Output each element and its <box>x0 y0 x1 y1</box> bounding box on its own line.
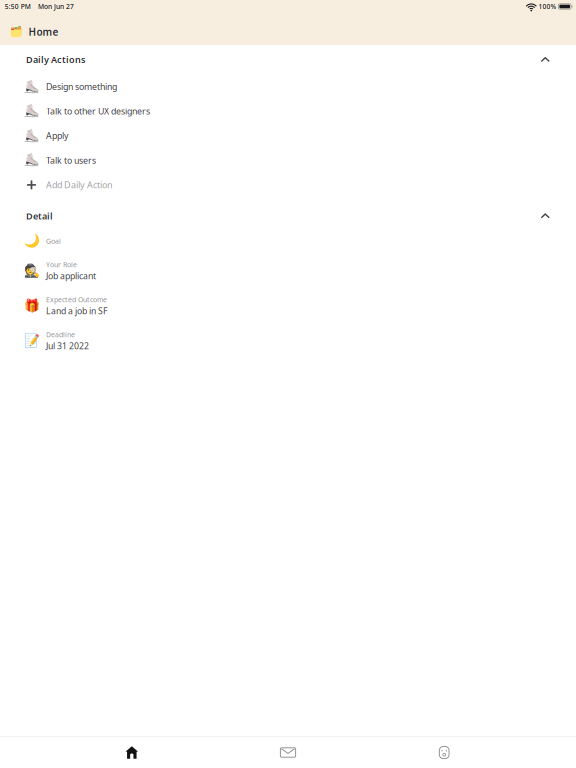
staticText: Job applicant <box>46 270 96 282</box>
staticText: Add Daily Action <box>46 179 113 191</box>
button[interactable]: 🗂️ <box>0 13 576 45</box>
staticText: 100% <box>538 2 556 11</box>
staticText: Design something <box>46 81 117 92</box>
button[interactable]: Home <box>54 737 210 768</box>
staticText: Talk to users <box>46 154 96 166</box>
button[interactable]: 🕵️ <box>0 253 576 288</box>
staticText: Mon Jun 27 <box>38 2 74 11</box>
button[interactable]: Detail <box>0 203 576 229</box>
staticText: ⛸️ <box>24 129 39 143</box>
staticText: Daily Actions <box>26 54 85 66</box>
button[interactable]: 🎁 <box>0 288 576 323</box>
button[interactable]: Daily Actions <box>0 45 576 74</box>
staticText: 🕵️ <box>23 263 39 278</box>
button[interactable]: 📝 <box>0 323 576 358</box>
staticText: Home <box>28 25 58 38</box>
staticText: 🎁 <box>23 298 39 313</box>
button[interactable]: Add Daily Action <box>0 173 576 197</box>
button[interactable]: ⛸️ <box>0 74 576 99</box>
staticText: 📝 <box>23 333 39 348</box>
button[interactable]: ⛸️ <box>0 123 576 148</box>
staticText: ⛸️ <box>24 79 39 93</box>
staticText: ⛸️ <box>24 153 39 167</box>
staticText: Talk to other UX designers <box>46 105 150 117</box>
button[interactable]: 🌙 <box>0 229 576 253</box>
staticText: Apply <box>46 130 68 142</box>
button[interactable]: ⛸️ <box>0 148 576 173</box>
staticText: Expected Outcome <box>46 295 107 304</box>
staticText: Detail <box>26 210 53 222</box>
staticText: ⛸️ <box>24 104 39 118</box>
staticText: 🌙 <box>23 234 39 248</box>
staticText: Land a job in SF <box>46 305 107 317</box>
staticText: Deadline <box>46 330 75 339</box>
staticText: 🗂️ <box>10 26 22 37</box>
staticText: Jul 31 2022 <box>46 340 89 352</box>
staticText: Your Role <box>46 260 77 269</box>
staticText: 5:50 PM <box>5 2 31 11</box>
staticText: Goal <box>46 236 61 246</box>
button[interactable]: ⛸️ <box>0 99 576 123</box>
button[interactable]: Profile <box>366 737 522 768</box>
button[interactable]: Messages <box>210 737 366 768</box>
